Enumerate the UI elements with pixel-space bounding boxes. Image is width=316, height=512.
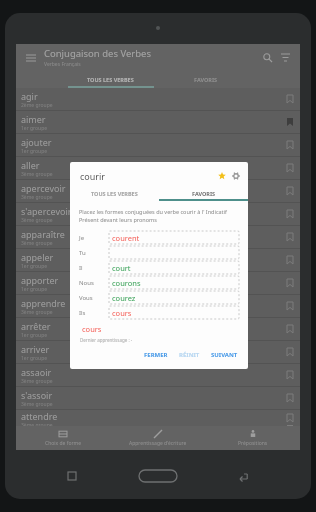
- button[interactable]: Prépositions: [205, 426, 300, 450]
- button[interactable]: SUIVANT: [208, 348, 241, 362]
- other: Bookmark: [287, 302, 293, 310]
- button[interactable]: aller: [16, 157, 300, 179]
- other: Bookmark: [287, 210, 293, 218]
- button[interactable]: apprendre: [16, 295, 300, 317]
- staticText: arriver: [21, 343, 50, 355]
- staticText: assaoir: [21, 366, 52, 378]
- staticText: Choix de forme: [45, 440, 82, 447]
- staticText: FAVORIS: [192, 190, 216, 197]
- staticText: apprendre: [21, 297, 66, 309]
- button[interactable]: assaoir: [16, 364, 300, 386]
- button[interactable]: apparaître: [16, 226, 300, 248]
- staticText: Il: [79, 264, 109, 272]
- staticText: 3ème groupe: [21, 422, 53, 426]
- button[interactable]: Settings: [229, 169, 243, 183]
- button[interactable]: Filter: [277, 49, 293, 65]
- button[interactable]: ajouter: [16, 134, 300, 156]
- button[interactable]: Choix de forme: [16, 426, 110, 450]
- staticText: Apprentissage d'écriture: [129, 440, 187, 447]
- staticText: courez: [112, 293, 136, 303]
- button[interactable]: attendre: [16, 410, 300, 426]
- staticText: Tu: [79, 249, 109, 257]
- staticText: Prépositions: [238, 440, 268, 447]
- button[interactable]: apercevoir: [16, 180, 300, 202]
- other: Bookmark: [287, 371, 293, 379]
- staticText: SUIVANT: [211, 351, 238, 359]
- other: Bookmark: [287, 348, 293, 356]
- staticText: cours: [82, 324, 102, 334]
- button[interactable]: RÉINIT: [176, 348, 203, 362]
- button[interactable]: Favorite: [215, 169, 229, 183]
- button[interactable]: Home: [139, 470, 177, 482]
- staticText: 3ème groupe: [21, 240, 53, 247]
- other: Bookmark: [287, 233, 293, 241]
- staticText: 2ème groupe: [21, 102, 53, 109]
- staticText: 1er groupe: [21, 286, 48, 293]
- other: Bookmark: [287, 141, 293, 149]
- staticText: Dernier apprentissage : -: [80, 337, 133, 343]
- other: Bookmark: [287, 256, 293, 264]
- button[interactable]: Menu: [23, 50, 38, 65]
- button[interactable]: TOUS LES VERBES: [63, 70, 158, 88]
- staticText: apporter: [21, 274, 59, 286]
- staticText: 3ème groupe: [21, 378, 53, 385]
- staticText: 1er groupe: [21, 355, 48, 362]
- button[interactable]: agir: [16, 88, 300, 110]
- button[interactable]: Apprentissage d'écriture: [110, 426, 205, 450]
- other: Bookmark: [287, 164, 293, 172]
- staticText: courons: [112, 278, 141, 288]
- staticText: FERMER: [144, 351, 168, 359]
- staticText: Vous: [79, 294, 109, 302]
- button[interactable]: Recents: [61, 465, 83, 487]
- staticText: 3ème groupe: [21, 194, 53, 201]
- staticText: Nous: [79, 279, 109, 287]
- staticText: courent: [112, 233, 140, 243]
- staticText: Ils: [79, 309, 109, 317]
- button[interactable]: aimer: [16, 111, 300, 133]
- button[interactable]: appeler: [16, 249, 300, 271]
- staticText: apparaître: [21, 228, 65, 240]
- staticText: 1er groupe: [21, 125, 48, 132]
- other: Bookmark: [287, 118, 293, 126]
- button[interactable]: arrêter: [16, 318, 300, 340]
- staticText: appeler: [21, 251, 54, 263]
- button[interactable]: Search: [259, 49, 275, 65]
- other: Bookmark: [287, 394, 293, 402]
- staticText: court: [112, 263, 131, 273]
- other: Bookmark: [287, 325, 293, 333]
- button[interactable]: arriver: [16, 341, 300, 363]
- staticText: 1er groupe: [21, 332, 48, 339]
- staticText: 3ème groupe: [21, 309, 53, 316]
- staticText: agir: [21, 90, 38, 102]
- other: Bookmark: [287, 95, 293, 103]
- staticText: RÉINIT: [179, 351, 200, 359]
- staticText: aller: [21, 159, 40, 171]
- button[interactable]: FERMER: [141, 348, 171, 362]
- staticText: s'assoir: [21, 389, 53, 401]
- staticText: 3ème groupe: [21, 217, 53, 224]
- staticText: apercevoir: [21, 182, 66, 194]
- staticText: 1er groupe: [21, 148, 48, 155]
- staticText: ajouter: [21, 136, 52, 148]
- button[interactable]: FAVORIS: [158, 70, 253, 88]
- staticText: 1er groupe: [21, 263, 48, 270]
- other: Bookmark: [287, 414, 293, 422]
- staticText: TOUS LES VERBES: [87, 76, 134, 83]
- button[interactable]: TOUS LES VERBES: [70, 186, 159, 201]
- staticText: 3ème groupe: [21, 171, 53, 178]
- staticText: attendre: [21, 410, 58, 422]
- button[interactable]: s'assoir: [16, 387, 300, 409]
- button[interactable]: Back: [233, 465, 255, 487]
- button[interactable]: apporter: [16, 272, 300, 294]
- staticText: Je: [79, 234, 109, 242]
- button[interactable]: FAVORIS: [159, 186, 248, 201]
- staticText: courir: [80, 170, 215, 182]
- staticText: FAVORIS: [194, 76, 218, 83]
- staticText: TOUS LES VERBES: [91, 190, 138, 197]
- staticText: Verbes Français: [44, 61, 81, 68]
- staticText: Conjugaison des Verbes: [44, 47, 151, 60]
- staticText: Placez les formes conjuguées du verbe co…: [79, 208, 239, 224]
- staticText: cours: [112, 308, 132, 318]
- button[interactable]: s'apercevoir: [16, 203, 300, 225]
- other: Bookmark: [287, 187, 293, 195]
